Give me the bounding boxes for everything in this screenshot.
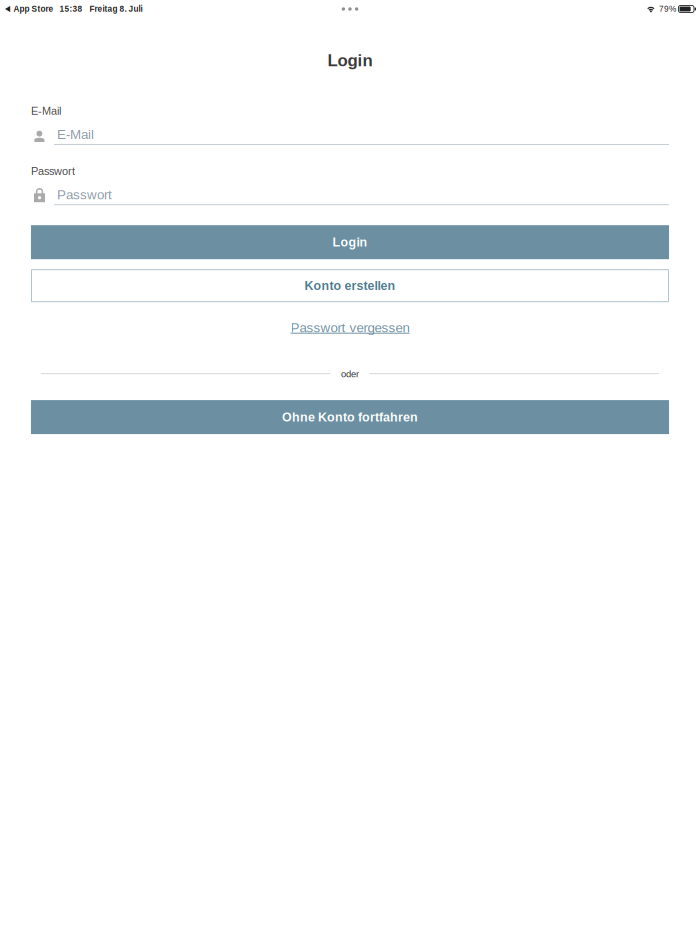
button[interactable]: Login [31, 225, 669, 259]
staticText: E-Mail [31, 105, 61, 117]
staticText: Login [327, 51, 372, 70]
staticText: E-Mail [57, 127, 94, 142]
staticText: Konto erstellen [304, 279, 395, 293]
staticText: Passwort [57, 187, 112, 202]
staticText: 15:38 [59, 4, 82, 14]
button[interactable]: Passwort vergessen [31, 320, 669, 335]
staticText: Passwort vergessen [290, 320, 409, 335]
staticText: 79% [659, 4, 676, 14]
button[interactable]: Ohne Konto fortfahren [31, 400, 669, 434]
button[interactable]: Konto erstellen [31, 269, 669, 302]
staticText: Login [332, 235, 367, 249]
staticText: Freitag 8. Juli [89, 4, 142, 14]
staticText: oder [341, 369, 359, 379]
staticText: Passwort [31, 165, 75, 177]
staticText: App Store [14, 4, 54, 14]
staticText: Ohne Konto fortfahren [282, 410, 418, 424]
